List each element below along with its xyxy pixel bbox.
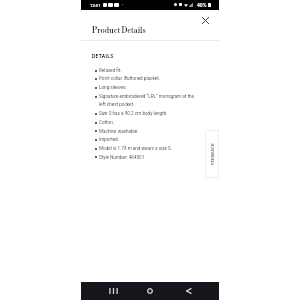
button[interactable]: Close xyxy=(197,12,213,28)
staticText: left chest pocket. xyxy=(99,102,135,107)
staticText: Long sleeves. xyxy=(99,85,127,90)
staticText: FEEDBACK xyxy=(210,143,215,165)
button[interactable]: FEEDBACK xyxy=(205,130,219,178)
staticText: Relaxed fit. xyxy=(99,68,122,73)
staticText: Model is 1.78 m and wears a size S. xyxy=(99,146,172,151)
staticText: Cotton. xyxy=(99,120,114,125)
staticText: 12:51 xyxy=(90,3,101,8)
staticText: Size S has a 90.2 cm body length. xyxy=(99,111,168,116)
button[interactable]: Home xyxy=(142,283,158,299)
staticText: Point collar. Buttoned placket. xyxy=(99,76,160,81)
staticText: Product Details xyxy=(92,26,146,35)
staticText: 40% xyxy=(197,2,207,8)
staticText: Style Number: 464501 xyxy=(99,155,145,160)
staticText: DETAILS xyxy=(92,53,114,59)
staticText: Imported. xyxy=(99,137,119,142)
staticText: Machine washable. xyxy=(99,129,139,134)
button[interactable]: Recents xyxy=(105,283,121,299)
staticText: Signature embroidered “LRL” monogram at … xyxy=(99,94,194,99)
button[interactable]: Back xyxy=(180,283,196,299)
